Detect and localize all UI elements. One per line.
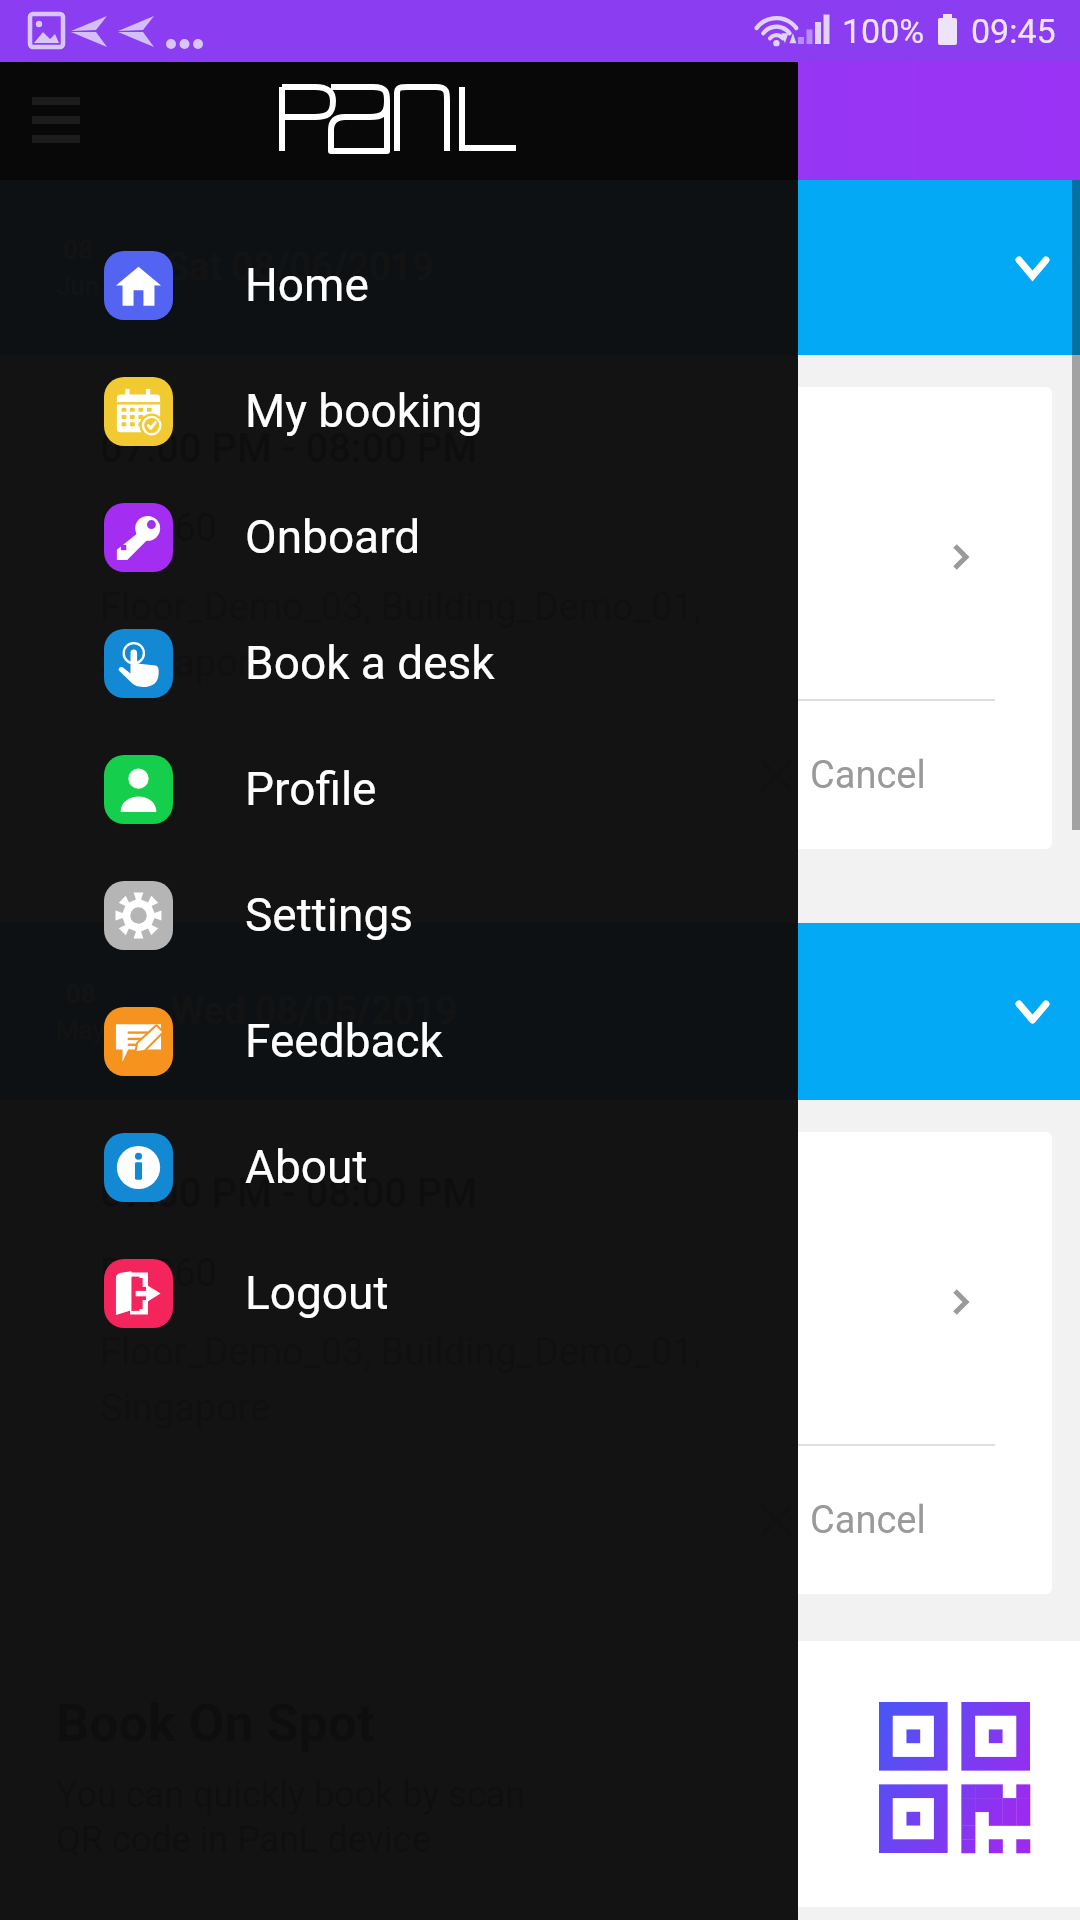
staticText: Onboard	[245, 510, 421, 564]
staticText: 07:00 PM - 08:00 PM	[100, 1170, 478, 1217]
button[interactable]: My booking	[0, 348, 798, 474]
button[interactable]: Scan QR code	[879, 1702, 1030, 1853]
button[interactable]: Book On Spot	[0, 1641, 1080, 1907]
button[interactable]: Cancel	[762, 701, 1052, 849]
button[interactable]: Logout	[0, 1230, 798, 1356]
staticText: 09:45	[971, 11, 1056, 51]
staticText: Sat 08/06/2019	[166, 245, 435, 290]
button[interactable]: Feedback	[0, 978, 798, 1104]
staticText: May	[56, 1015, 105, 1045]
staticText: Book a desk	[245, 636, 495, 690]
staticText: Profile	[245, 762, 377, 816]
staticText: Rx-360	[100, 506, 217, 551]
staticText: 100%	[842, 11, 925, 51]
staticText: 07:00 PM - 08:00 PM	[100, 425, 478, 472]
button[interactable]: Book a desk	[0, 600, 798, 726]
button[interactable]: Menu	[16, 85, 96, 155]
button[interactable]: 07:00 PM - 08:00 PM	[24, 1132, 1052, 1594]
button[interactable]: Collapse day	[1004, 240, 1060, 296]
button[interactable]: Settings	[0, 852, 798, 978]
staticText: Cancel	[810, 1498, 926, 1543]
button[interactable]: Home	[0, 222, 798, 348]
button[interactable]: 07:00 PM - 08:00 PM	[24, 387, 1052, 849]
staticText: Logout	[245, 1266, 389, 1320]
button[interactable]: Cancel	[762, 1446, 1052, 1594]
button[interactable]: 08	[0, 923, 1080, 1100]
button[interactable]: Profile	[0, 726, 798, 852]
staticText: Rx-360	[100, 1251, 217, 1296]
staticText: Floor_Demo_03, Building_Demo_01, Singapo…	[100, 585, 702, 686]
staticText: My booking	[245, 384, 483, 438]
button[interactable]: Collapse day	[1004, 984, 1060, 1040]
staticText: Home	[245, 258, 369, 312]
button[interactable]: About	[0, 1104, 798, 1230]
button[interactable]: 08	[0, 180, 1080, 355]
staticText: About	[245, 1140, 368, 1194]
staticText: Settings	[245, 888, 413, 942]
button[interactable]: Onboard	[0, 474, 798, 600]
staticText: Cancel	[810, 753, 926, 798]
staticText: Wed 08/05/2019	[171, 989, 458, 1034]
staticText: Feedback	[245, 1014, 443, 1068]
